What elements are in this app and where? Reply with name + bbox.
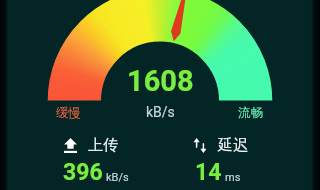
button[interactable]: Upload	[11, 136, 171, 155]
staticText: 上传	[88, 136, 118, 155]
other: Latency	[193, 138, 207, 153]
other: Upload	[64, 138, 77, 153]
button[interactable]: Latency	[140, 136, 300, 155]
staticText: 缓慢	[56, 105, 81, 121]
staticText: kB/s	[106, 171, 129, 184]
staticText: 396	[63, 159, 103, 186]
staticText: 流畅	[238, 105, 263, 121]
staticText: ms	[225, 171, 241, 184]
staticText: kB/s	[146, 104, 175, 120]
staticText: 14	[195, 159, 222, 186]
staticText: 1608	[127, 64, 194, 98]
staticText: 延迟	[218, 136, 248, 155]
